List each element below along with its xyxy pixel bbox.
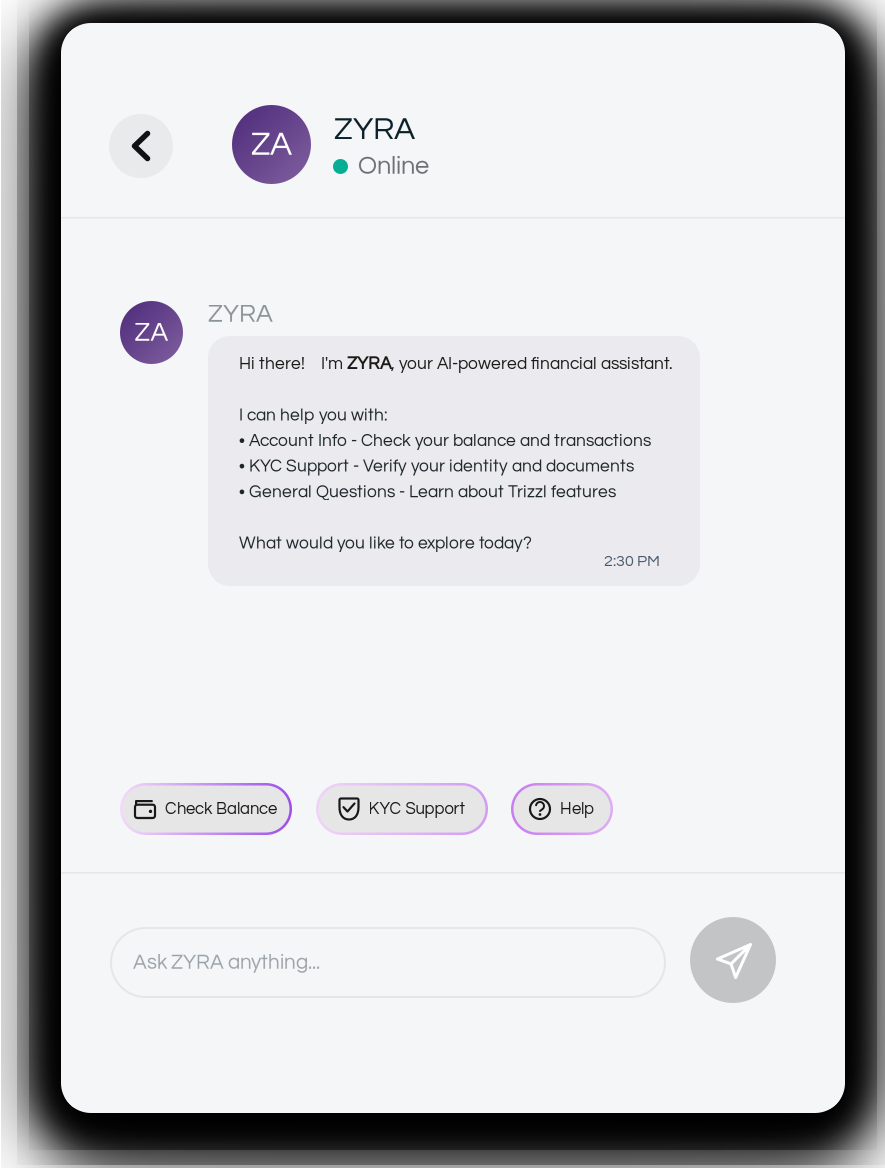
staticText: ZYRA (208, 301, 273, 327)
staticText: KYC Support (368, 800, 464, 818)
staticText: Help (560, 800, 594, 818)
button[interactable]: Ask ZYRA anything... (111, 928, 665, 997)
staticText: I can help you with: (239, 406, 388, 424)
staticText: • General Questions - Learn about Trizzl… (239, 483, 616, 501)
button[interactable]: Check Balance (120, 783, 292, 835)
staticText: 2:30 PM (604, 553, 660, 569)
staticText: Online (358, 153, 429, 179)
staticText: What would you like to explore today? (239, 534, 532, 552)
staticText: ZA (134, 319, 168, 346)
button[interactable]: Back (109, 114, 173, 178)
staticText: ZA (251, 127, 292, 162)
button[interactable]: Send (690, 917, 776, 1003)
button[interactable]: KYC Support (316, 783, 488, 835)
staticText: • Account Info - Check your balance and … (239, 432, 651, 450)
staticText: ZYRA (334, 113, 415, 146)
staticText: Ask ZYRA anything... (133, 952, 320, 973)
staticText: Check Balance (165, 800, 277, 818)
staticText: Hi there! I'm ZYRA, your AI-powered fina… (239, 355, 673, 372)
button[interactable]: Help (511, 783, 613, 835)
staticText: • KYC Support - Verify your identity and… (239, 457, 634, 475)
